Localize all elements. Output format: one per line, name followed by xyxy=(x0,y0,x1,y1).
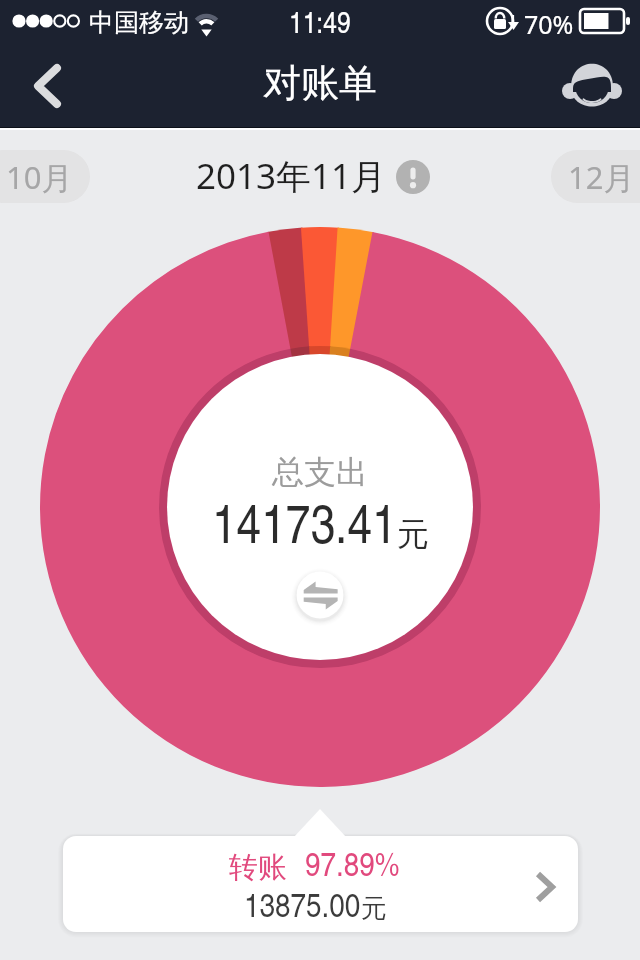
staticText: 中国移动 xyxy=(89,7,189,38)
staticText: 总支出 xyxy=(272,452,368,492)
staticText: 转账 xyxy=(229,849,287,886)
staticText: 元 xyxy=(397,514,429,554)
staticText: 11:49 xyxy=(289,0,351,41)
staticText: 97.89% xyxy=(305,839,400,886)
staticText: 10月 xyxy=(6,156,73,198)
button[interactable]: 10月 xyxy=(0,150,90,203)
staticText: 2013年11月 xyxy=(196,152,387,200)
staticText: 70% xyxy=(524,7,574,41)
button[interactable]: 2013年11月 xyxy=(196,150,430,203)
staticText: 对账单 xyxy=(263,59,377,107)
button[interactable]: Profile xyxy=(564,58,620,114)
staticText: 元 xyxy=(361,892,387,925)
staticText: 12月 xyxy=(568,156,635,198)
button[interactable]: 转账 xyxy=(63,836,578,932)
button[interactable]: Swap xyxy=(291,566,349,624)
staticText: 14173.41 xyxy=(212,484,397,558)
staticText: 13875.00 xyxy=(244,880,361,927)
button[interactable]: 12月 xyxy=(551,150,640,203)
button[interactable]: Back xyxy=(16,58,72,114)
